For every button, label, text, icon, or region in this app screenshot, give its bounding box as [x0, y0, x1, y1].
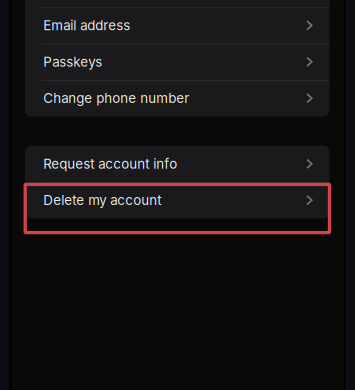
button[interactable]: Email address	[25, 7, 329, 44]
button[interactable]: Passkeys	[25, 44, 329, 80]
staticText: Passkeys	[43, 54, 102, 70]
staticText: Email address	[43, 17, 130, 33]
button[interactable]: Delete my account	[25, 182, 329, 218]
staticText: Change phone number	[43, 90, 189, 106]
button[interactable]: Request account info	[25, 146, 329, 182]
button[interactable]: Change phone number	[25, 80, 329, 116]
staticText: Delete my account	[43, 192, 161, 208]
staticText: Request account info	[43, 156, 177, 172]
